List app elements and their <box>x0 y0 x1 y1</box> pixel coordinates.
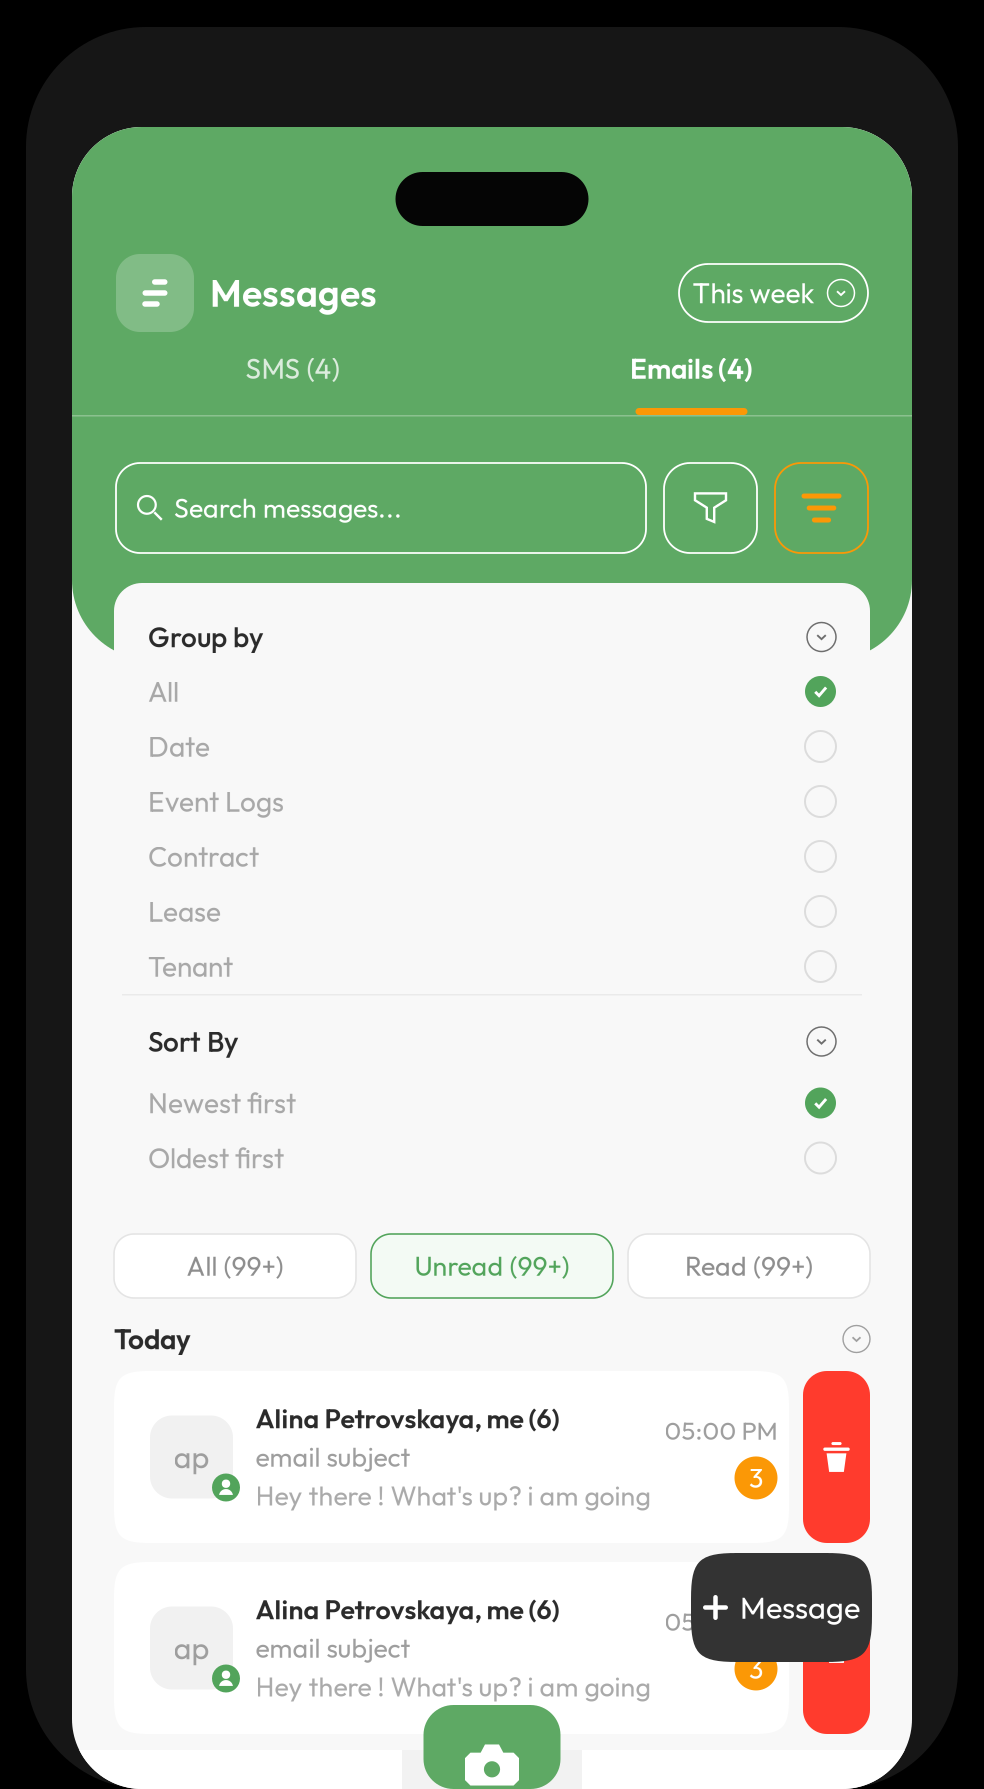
staticText: Hey there ! What's up? i am going <box>255 1670 650 1703</box>
staticText: 3 <box>749 1652 763 1686</box>
button[interactable]: Lease <box>114 884 870 939</box>
staticText: Read (99+) <box>685 1249 813 1283</box>
button[interactable]: This week <box>679 264 868 322</box>
staticText: Search messages... <box>174 491 402 525</box>
staticText: Unread (99+) <box>414 1249 569 1283</box>
staticText: SMS (4) <box>245 351 339 386</box>
button[interactable]: Tenant <box>114 939 870 994</box>
staticText: Message <box>740 1588 860 1627</box>
button[interactable]: Date <box>114 719 870 774</box>
staticText: This week <box>692 275 814 311</box>
button[interactable]: Emails (4) <box>492 332 891 415</box>
staticText: Newest first <box>148 1085 296 1121</box>
staticText: 3 <box>749 1461 763 1495</box>
staticText: 05:00 PM <box>664 1605 777 1637</box>
button[interactable]: Event Logs <box>114 774 870 829</box>
staticText: Alina Petrovskaya, me (6) <box>255 1593 559 1626</box>
button[interactable]: Search messages... <box>116 463 646 553</box>
button[interactable]: All (99+) <box>114 1234 356 1298</box>
staticText: All <box>148 674 179 709</box>
staticText: email subject <box>255 1440 410 1474</box>
staticText: Tenant <box>148 949 233 984</box>
staticText: ap <box>173 1438 209 1476</box>
button[interactable]: Read (99+) <box>628 1234 870 1298</box>
button[interactable]: Unread (99+) <box>371 1234 613 1298</box>
staticText: Oldest first <box>148 1140 284 1176</box>
staticText: Lease <box>148 894 221 929</box>
staticText: Date <box>148 729 210 764</box>
button[interactable]: SMS (4) <box>93 332 492 415</box>
button[interactable]: Contract <box>114 829 870 884</box>
button[interactable]: Sort By <box>114 995 870 1075</box>
button[interactable]: Message <box>691 1553 872 1662</box>
button[interactable]: Newest first <box>114 1075 870 1130</box>
button[interactable]: Camera <box>423 1705 560 1789</box>
staticText: Emails (4) <box>630 351 753 386</box>
button[interactable]: Sort <box>775 463 868 553</box>
staticText: Event Logs <box>148 784 284 819</box>
button[interactable]: ap <box>114 1371 789 1543</box>
staticText: ap <box>173 1629 209 1667</box>
staticText: 05:00 PM <box>664 1414 777 1446</box>
staticText: email subject <box>255 1631 410 1665</box>
staticText: Sort By <box>148 1024 239 1059</box>
staticText: Contract <box>148 839 259 874</box>
button[interactable]: Menu <box>116 254 194 332</box>
button[interactable]: Oldest first <box>114 1130 870 1185</box>
staticText: Alina Petrovskaya, me (6) <box>255 1402 559 1435</box>
staticText: Hey there ! What's up? i am going <box>255 1479 650 1512</box>
staticText: All (99+) <box>186 1249 283 1283</box>
button[interactable]: All <box>114 664 870 719</box>
staticText: Group by <box>148 619 264 655</box>
button[interactable]: ap <box>114 1562 789 1734</box>
button[interactable]: Filter <box>664 463 757 553</box>
button[interactable]: Group by <box>114 583 870 664</box>
staticText: Today <box>114 1321 191 1357</box>
staticText: Messages <box>210 269 377 316</box>
